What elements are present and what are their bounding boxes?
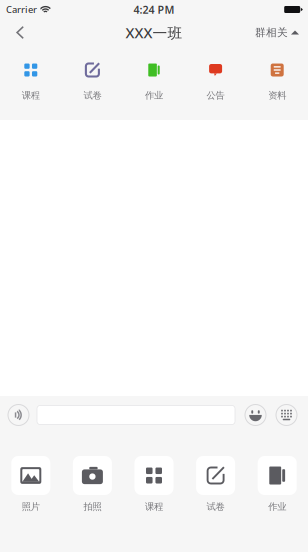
staticText: 照片	[22, 501, 40, 512]
staticText: 试卷	[83, 89, 101, 101]
button[interactable]: 课程	[123, 456, 185, 512]
button[interactable]: Keyboard	[271, 404, 302, 425]
button[interactable]: 拍照	[62, 456, 123, 512]
staticText: 课程	[22, 89, 40, 101]
staticText: XXX一班	[125, 23, 182, 42]
staticText: 课程	[145, 501, 163, 512]
button[interactable]: 群相关	[246, 19, 308, 45]
button[interactable]: 照片	[0, 456, 62, 512]
button[interactable]: 作业	[246, 456, 308, 512]
button[interactable]: Emoji	[240, 404, 271, 425]
staticText: Carrier	[6, 3, 37, 16]
button[interactable]: 试卷	[185, 456, 246, 512]
button[interactable]: 资料	[246, 63, 308, 101]
button[interactable]: 试卷	[62, 63, 123, 101]
button[interactable]: 课程	[0, 63, 62, 101]
staticText: 作业	[268, 501, 286, 512]
staticText: 作业	[145, 89, 163, 101]
staticText: 公告	[207, 89, 225, 101]
staticText: 4:24 PM	[133, 2, 174, 17]
staticText: 资料	[268, 89, 286, 101]
staticText: 群相关	[255, 26, 288, 39]
staticText: 拍照	[83, 501, 101, 512]
button[interactable]: 公告	[185, 63, 246, 101]
staticText: 试卷	[207, 501, 225, 512]
button[interactable]: Voice message	[0, 404, 37, 425]
button[interactable]: Back	[0, 19, 40, 46]
button[interactable]: 作业	[123, 63, 185, 101]
